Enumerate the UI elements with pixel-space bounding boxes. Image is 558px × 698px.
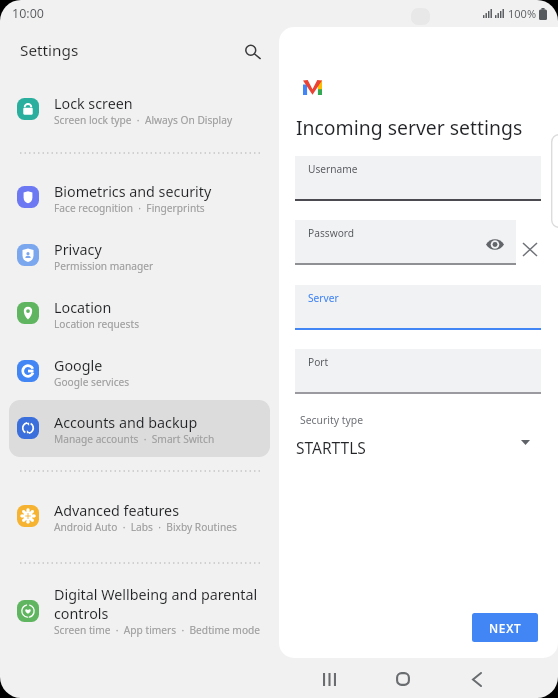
staticText: Location requests [54,317,140,331]
button[interactable]: Back [454,656,500,698]
staticText: 100% [508,6,537,21]
staticText: Advanced features [54,501,180,520]
staticText: Security type [300,413,363,427]
staticText: Manage accounts · Smart Switch [54,432,215,446]
staticText: STARTTLS [296,437,366,458]
button[interactable] [9,169,270,226]
button[interactable] [9,285,270,342]
button[interactable]: Close [516,235,544,263]
button[interactable] [9,227,270,284]
staticText: Privacy [54,240,102,259]
button[interactable]: Recent apps [306,656,352,698]
button[interactable] [9,343,270,400]
staticText: Digital Wellbeing and parental controls [54,585,258,623]
staticText: NEXT [489,620,522,636]
staticText: 10:00 [12,5,44,22]
staticText: Screen lock type · Always On Display [54,113,233,127]
staticText: Incoming server settings [296,114,523,140]
staticText: Password [308,226,355,240]
button[interactable]: Show password [482,231,508,257]
button[interactable] [295,285,541,330]
button[interactable]: STARTTLS [296,433,542,461]
staticText: Face recognition · Fingerprints [54,201,205,215]
staticText: Android Auto · Labs · Bixby Routines [54,520,237,534]
staticText: Server [308,291,339,305]
staticText: Permission manager [54,259,154,273]
button[interactable]: Search [238,37,268,67]
staticText: Accounts and backup [54,413,198,432]
button[interactable] [295,220,516,265]
button[interactable] [9,400,270,457]
staticText: Biometrics and security [54,182,212,201]
button[interactable] [295,156,541,201]
staticText: Username [308,162,358,176]
button[interactable]: Home [380,656,426,698]
staticText: Location [54,298,112,317]
staticText: Google services [54,375,130,389]
staticText: Port [308,355,329,369]
staticText: Lock screen [54,94,133,113]
staticText: Google [54,356,103,375]
button[interactable] [9,488,270,545]
button[interactable] [9,81,270,138]
staticText: Settings [20,40,79,61]
button[interactable] [9,583,270,649]
button[interactable]: NEXT [472,613,538,642]
staticText: Screen time · App timers · Bedtime mode [54,623,261,637]
button[interactable] [295,349,541,394]
